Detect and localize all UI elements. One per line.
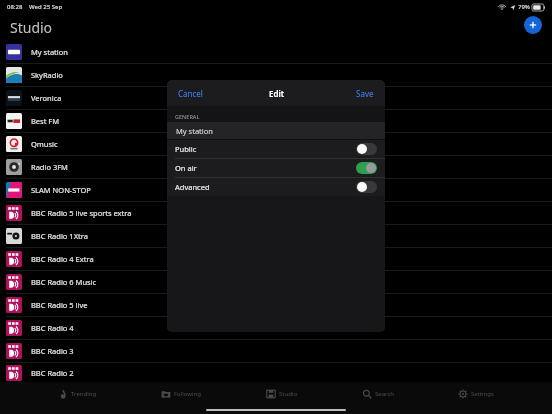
staticText: Advanced (175, 182, 210, 192)
staticText: SLAM NON-STOP (31, 185, 91, 195)
staticText: BBC Radio 5 live sports extra (31, 208, 132, 218)
button[interactable]: Radio 3FM (0, 156, 552, 179)
button[interactable]: Studio (260, 386, 304, 402)
staticText: Following (174, 390, 202, 398)
button[interactable]: BBC Radio 4 Extra (0, 248, 552, 271)
button[interactable]: Best FM (0, 110, 552, 133)
button[interactable]: BBC Radio 5 live sports extra (0, 202, 552, 225)
button[interactable]: Advanced (167, 178, 385, 196)
staticText: BBC Radio 4 (31, 323, 74, 333)
button[interactable]: BBC Radio 2 (0, 363, 552, 382)
staticText: BBC Radio 3 (31, 346, 74, 356)
button[interactable]: Veronica (0, 87, 552, 110)
button[interactable]: Cancel (175, 85, 206, 102)
staticText: On air (175, 163, 197, 173)
staticText: Settings (471, 390, 494, 398)
staticText: SkyRadio (31, 70, 63, 80)
staticText: My station (176, 126, 213, 136)
staticText: Studio (10, 18, 53, 37)
staticText: Best FM (31, 116, 60, 126)
button[interactable]: SLAM NON-STOP (0, 179, 552, 202)
staticText: Edit (269, 88, 284, 99)
staticText: Trending (71, 390, 97, 398)
staticText: BBC Radio 1Xtra (31, 231, 88, 241)
staticText: BBC Radio 6 Music (31, 277, 97, 287)
button[interactable]: Trending (52, 386, 103, 402)
staticText: 08:28 (7, 3, 23, 11)
button[interactable]: Add station (524, 16, 542, 34)
staticText: Wed 25 Sep (29, 3, 63, 11)
staticText: Search (375, 390, 394, 398)
button[interactable]: SkyRadio (0, 64, 552, 87)
button[interactable]: Following (155, 386, 208, 402)
button[interactable]: Qmusic (0, 133, 552, 156)
staticText: Qmusic (31, 139, 58, 149)
staticText: GENERAL (175, 113, 200, 120)
button[interactable]: On air (167, 159, 385, 177)
button[interactable]: BBC Radio 5 live (0, 294, 552, 317)
button[interactable]: BBC Radio 4 (0, 317, 552, 340)
staticText: Studio (279, 390, 298, 398)
button[interactable]: Search (356, 386, 400, 402)
staticText: Veronica (31, 93, 62, 103)
button[interactable]: My station (167, 122, 385, 139)
staticText: BBC Radio 5 live (31, 300, 88, 310)
button[interactable]: BBC Radio 3 (0, 340, 552, 363)
button[interactable]: Settings (452, 386, 500, 402)
staticText: Public (175, 144, 197, 154)
button[interactable]: BBC Radio 1Xtra (0, 225, 552, 248)
staticText: My station (31, 47, 68, 57)
button[interactable]: My station (0, 41, 552, 64)
staticText: 79% (518, 3, 530, 11)
staticText: Save (356, 88, 374, 99)
staticText: Radio 3FM (31, 162, 68, 172)
staticText: BBC Radio 4 Extra (31, 254, 94, 264)
button[interactable]: Save (353, 85, 377, 102)
staticText: Cancel (178, 88, 203, 99)
button[interactable]: BBC Radio 6 Music (0, 271, 552, 294)
staticText: BBC Radio 2 (31, 368, 74, 378)
button[interactable]: Public (167, 140, 385, 158)
